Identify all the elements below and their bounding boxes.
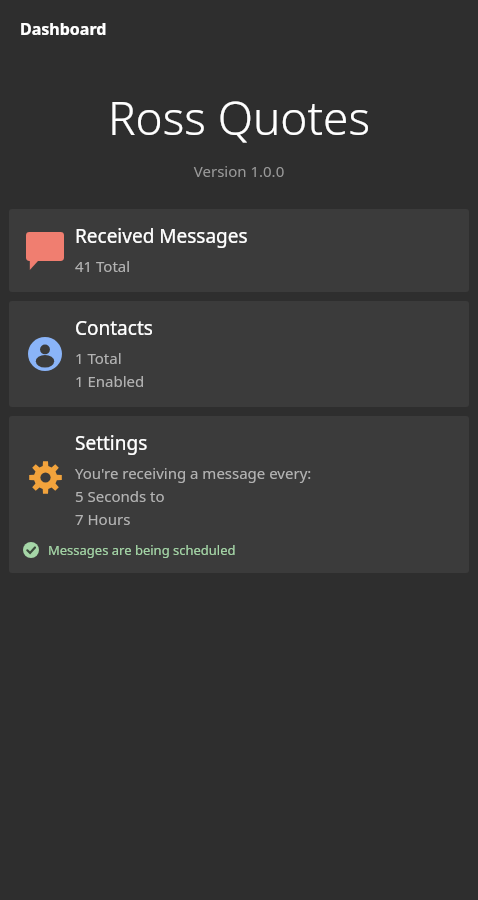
button[interactable]: Settings <box>9 416 469 573</box>
staticText: You're receiving a message every: <box>75 463 312 483</box>
staticText: Ross Quotes <box>0 86 478 149</box>
staticText: 41 Total <box>75 256 131 276</box>
button[interactable]: Received messages <box>9 209 469 292</box>
staticText: 1 Enabled <box>75 371 145 391</box>
staticText: Settings <box>75 430 148 456</box>
staticText: Version 1.0.0 <box>0 161 478 181</box>
staticText: 7 Hours <box>75 509 131 529</box>
staticText: Dashboard <box>20 18 107 40</box>
staticText: 5 Seconds to <box>75 486 165 506</box>
staticText: Messages are being scheduled <box>48 541 236 559</box>
button[interactable]: Contacts <box>9 301 469 407</box>
staticText: Contacts <box>75 315 153 341</box>
staticText: Received Messages <box>75 223 248 249</box>
staticText: 1 Total <box>75 348 122 368</box>
